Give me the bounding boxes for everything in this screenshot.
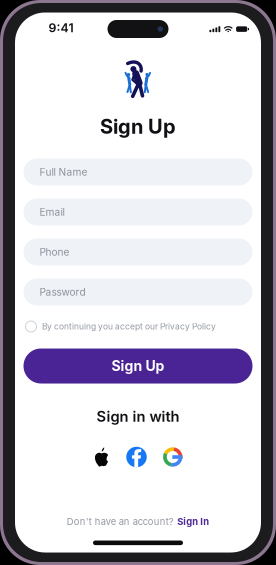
staticText: Password (39, 286, 85, 298)
staticText: Sign Up (111, 357, 164, 374)
button[interactable]: Password (23, 278, 252, 305)
staticText: Sign In (177, 516, 209, 527)
staticText: By continuing you accept our Privacy Pol… (42, 321, 216, 332)
staticText: 9:41 (48, 20, 73, 35)
button[interactable]: Email (23, 198, 252, 225)
button[interactable]: Sign In (177, 516, 209, 527)
button[interactable]: Sign Up (23, 348, 252, 383)
button[interactable]: Sign in with Google (163, 447, 183, 467)
button[interactable]: By continuing you accept our Privacy Pol… (15, 321, 261, 332)
button[interactable]: Full Name (23, 158, 252, 185)
staticText: Phone (39, 246, 69, 258)
staticText: Don't have an account? (67, 516, 174, 527)
staticText: Sign in with (96, 408, 179, 425)
button[interactable]: Sign in with Facebook (126, 447, 147, 467)
staticText: Full Name (39, 166, 87, 178)
staticText: Email (39, 206, 64, 218)
staticText: Sign Up (100, 114, 176, 139)
button[interactable]: Phone (23, 238, 252, 265)
button[interactable]: Sign in with Apple (93, 447, 110, 467)
